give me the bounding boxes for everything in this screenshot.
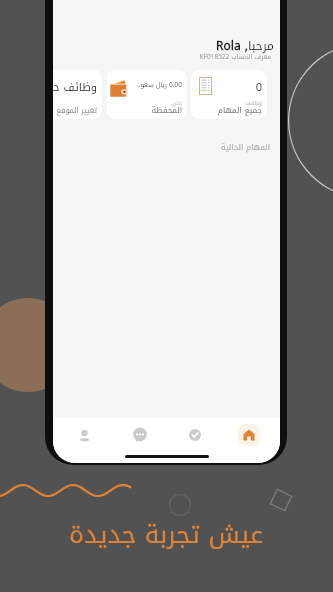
staticText: تغيير الموقع (53, 103, 97, 117)
button[interactable]: Home (222, 418, 276, 452)
staticText: جميع المهام (191, 103, 262, 118)
button[interactable]: وظائف حول (53, 70, 102, 119)
staticText: 0.00 ريال سعو.. (107, 79, 182, 91)
staticText: مرحبا, Rola (53, 35, 274, 58)
button[interactable]: Messages (112, 418, 167, 452)
staticText: وظائف حول (53, 77, 97, 98)
button[interactable]: Profile (57, 418, 112, 452)
button[interactable]: 0.00 ريال سعو.. (107, 70, 187, 119)
button[interactable]: Tasks (167, 418, 222, 452)
staticText: حتى (107, 98, 182, 108)
staticText: 0 (191, 77, 262, 98)
staticText: المهام الحالية (220, 140, 270, 155)
button[interactable]: 0 (191, 70, 267, 119)
staticText: وظائف (191, 98, 262, 108)
staticText: عيش تجربة جديدة (69, 511, 264, 558)
staticText: معرف الحساب KF018522 (53, 51, 271, 63)
staticText: المحفظة (107, 103, 182, 118)
